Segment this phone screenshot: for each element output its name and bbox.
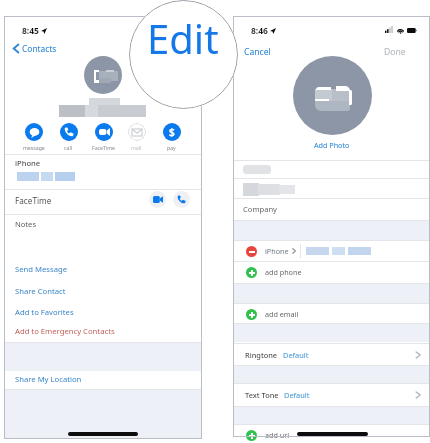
staticText: add email	[265, 309, 299, 319]
button[interactable]: iPhone	[233, 241, 430, 261]
staticText: Notes	[15, 219, 37, 229]
staticText: Default	[284, 390, 310, 400]
staticText: Ringtone	[245, 350, 278, 360]
staticText: Done	[384, 46, 406, 58]
staticText: Company	[243, 204, 277, 214]
staticText: 8:45	[22, 25, 39, 37]
button[interactable]: Text Tone	[233, 384, 430, 405]
button[interactable]: add phone	[233, 262, 430, 282]
staticText: iPhone	[265, 246, 289, 256]
button[interactable]: Add to Favorites	[4, 302, 202, 323]
staticText: Cancel	[244, 46, 271, 58]
button[interactable]: Add to Emergency Contacts	[4, 322, 202, 342]
staticText: 8:46	[251, 25, 268, 37]
staticText: Send Message	[15, 264, 68, 274]
button[interactable]: $	[155, 123, 188, 151]
staticText: add phone	[265, 267, 302, 277]
staticText: FaceTime	[15, 195, 52, 206]
button[interactable]: Call	[173, 191, 190, 208]
button[interactable]: FaceTime video	[149, 191, 166, 208]
staticText: mail	[131, 144, 142, 151]
staticText: Add to Favorites	[15, 307, 74, 317]
button[interactable]: Done	[381, 44, 409, 60]
button[interactable]: Add Photo	[233, 139, 430, 151]
button[interactable]: add email	[233, 304, 430, 324]
staticText: Edit	[147, 11, 219, 65]
staticText: Text Tone	[245, 390, 279, 400]
staticText: Default	[283, 350, 309, 360]
staticText: iPhone	[15, 158, 41, 168]
staticText: add url	[265, 430, 290, 440]
staticText: pay	[167, 144, 176, 151]
button[interactable]: mail	[120, 123, 153, 151]
staticText: Contacts	[22, 43, 57, 54]
button[interactable]: FaceTime	[87, 123, 120, 151]
staticText: Add Photo	[314, 140, 350, 150]
staticText: Share Contact	[15, 286, 66, 296]
button[interactable]: Share Contact	[4, 281, 202, 302]
staticText: message	[23, 144, 45, 151]
button[interactable]: add url	[233, 425, 430, 443]
staticText: call	[64, 144, 73, 151]
staticText: Add to Emergency Contacts	[15, 326, 115, 336]
staticText: Share My Location	[15, 374, 82, 384]
button[interactable]: Share My Location	[4, 371, 202, 389]
button[interactable]: Cancel	[241, 44, 274, 60]
button[interactable]: call	[52, 123, 85, 151]
button[interactable]: Send Message	[4, 260, 202, 280]
staticText: $	[169, 125, 175, 139]
button[interactable]: message	[17, 123, 50, 151]
staticText: FaceTime	[92, 144, 116, 151]
button[interactable]: Ringtone	[233, 344, 430, 365]
button[interactable]: Contacts	[11, 41, 59, 56]
